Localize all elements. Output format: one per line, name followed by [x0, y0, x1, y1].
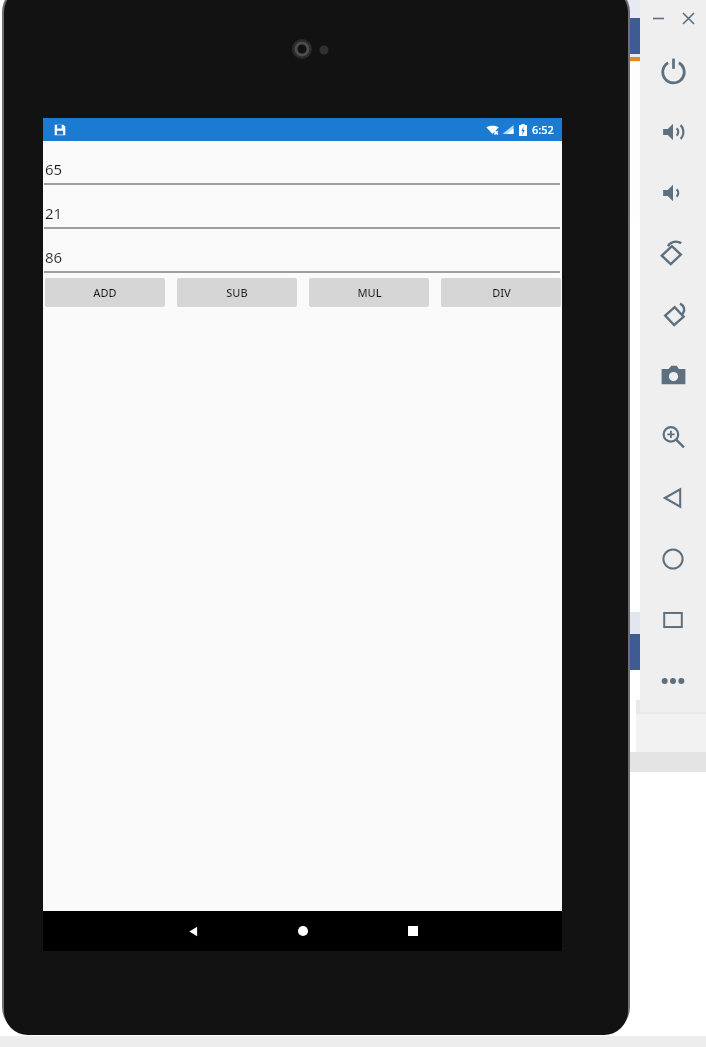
- button[interactable]: Volume up: [640, 101, 706, 162]
- button[interactable]: DIV: [441, 278, 561, 307]
- button[interactable]: Take screenshot: [640, 345, 706, 406]
- button[interactable]: Close: [677, 7, 699, 29]
- button[interactable]: Power: [640, 40, 706, 101]
- button[interactable]: 21: [43, 185, 562, 229]
- staticText: 65: [45, 159, 63, 179]
- button[interactable]: Overview: [640, 589, 706, 650]
- button[interactable]: Recent apps: [358, 911, 468, 951]
- button[interactable]: SUB: [177, 278, 297, 307]
- button[interactable]: Rotate left: [640, 223, 706, 284]
- button[interactable]: Back: [640, 467, 706, 528]
- staticText: DIV: [492, 285, 511, 300]
- button[interactable]: Volume down: [640, 162, 706, 223]
- button[interactable]: MUL: [309, 278, 429, 307]
- staticText: 86: [45, 247, 63, 267]
- button[interactable]: ADD: [45, 278, 165, 307]
- staticText: MUL: [357, 285, 382, 300]
- staticText: 21: [45, 203, 63, 223]
- staticText: 6:52: [532, 122, 554, 137]
- button[interactable]: More: [640, 650, 706, 711]
- button[interactable]: Home: [640, 528, 706, 589]
- button[interactable]: 65: [43, 141, 562, 185]
- button[interactable]: Home: [248, 911, 358, 951]
- staticText: ADD: [93, 285, 117, 300]
- staticText: SUB: [226, 285, 248, 300]
- button[interactable]: Rotate right: [640, 284, 706, 345]
- button[interactable]: Minimize: [647, 7, 669, 29]
- button[interactable]: 86: [43, 229, 562, 273]
- button[interactable]: Back: [138, 911, 248, 951]
- button[interactable]: Zoom: [640, 406, 706, 467]
